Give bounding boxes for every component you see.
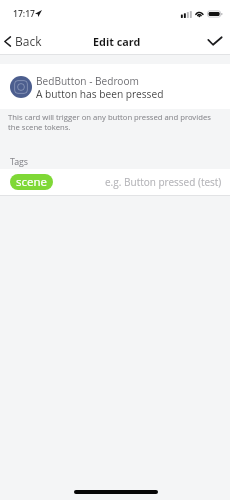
staticText: A button has been pressed	[36, 87, 164, 101]
button[interactable]: scene	[10, 174, 53, 190]
staticText: Back	[15, 33, 42, 49]
staticText: 17:17	[13, 8, 35, 20]
staticText: Edit card	[93, 34, 141, 49]
staticText: Tags	[10, 156, 29, 168]
staticText: scene	[16, 174, 47, 190]
staticText: This card will trigger on any button pre…	[8, 112, 224, 132]
staticText: e.g. Button pressed (test)	[105, 175, 222, 189]
button[interactable]: Back	[0, 30, 50, 52]
staticText: BedButton - Bedroom	[36, 74, 139, 88]
button[interactable]: BedButton - Bedroom	[0, 64, 230, 109]
button[interactable]: Save	[200, 32, 230, 50]
